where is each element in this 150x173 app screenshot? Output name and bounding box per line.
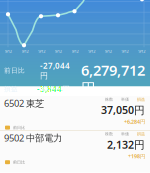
staticText: 9/12	[88, 49, 95, 54]
staticText: -3,844円	[37, 84, 70, 94]
staticText: 前日比	[13, 125, 25, 130]
staticText: 9/12	[121, 49, 128, 54]
staticText: +6,284円	[124, 118, 145, 125]
staticText: 9/12	[105, 49, 112, 54]
staticText: 前日比	[4, 66, 25, 75]
staticText: 9/12	[5, 49, 12, 54]
staticText: 6,279,712円	[81, 60, 145, 98]
staticText: 9502 中部電力	[4, 132, 62, 144]
staticText: 6502 東芝	[4, 97, 44, 109]
staticText: 単価	[121, 97, 129, 102]
staticText: 単価	[121, 132, 129, 136]
button[interactable]: 9502 中部電力	[0, 131, 150, 165]
staticText: 37,050円	[101, 103, 145, 117]
staticText: 損益	[137, 97, 145, 102]
staticText: 9/12	[38, 49, 45, 54]
staticText: 9/12	[55, 49, 62, 54]
staticText: 9/12	[138, 49, 145, 54]
staticText: -27,044円	[40, 60, 70, 81]
staticText: 株数	[105, 132, 113, 136]
staticText: 株数	[105, 97, 113, 102]
staticText: 損益	[4, 85, 18, 93]
button[interactable]: 6502 東芝	[0, 96, 150, 130]
staticText: 9/12	[71, 49, 78, 54]
staticText: 前日比	[13, 160, 25, 165]
staticText: 9/12	[21, 49, 28, 54]
staticText: 2,132円	[107, 137, 145, 152]
staticText: 損益	[137, 132, 145, 136]
staticText: +198円	[128, 153, 145, 160]
